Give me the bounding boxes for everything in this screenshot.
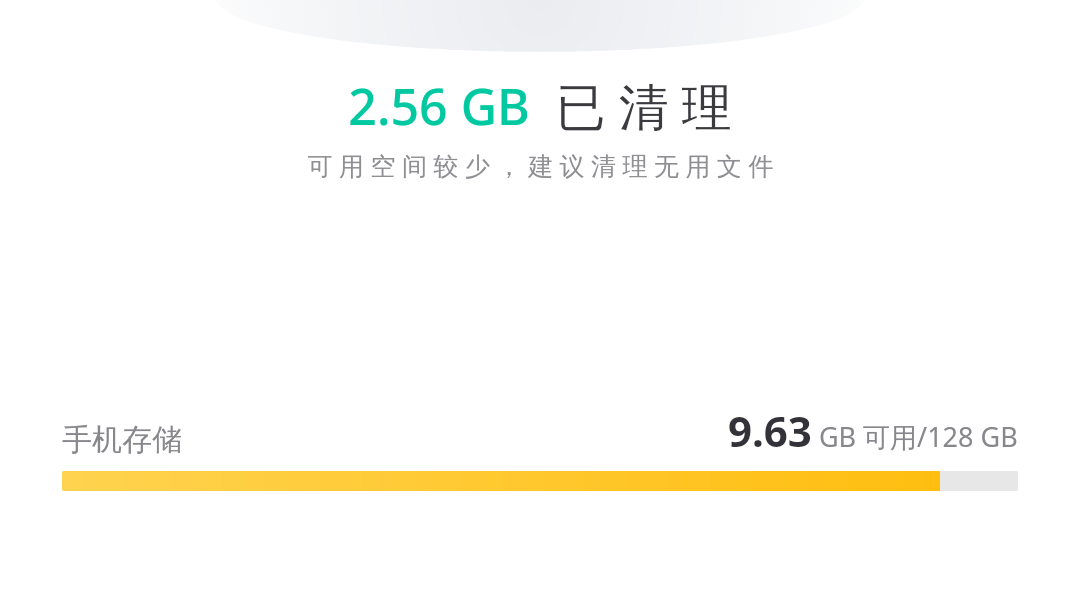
button[interactable]: 手机存储 — [0, 402, 1080, 491]
other: Storage usage 91 percent — [62, 471, 1018, 491]
staticText: 可 用 空 间 较 少 ， 建 议 清 理 无 用 文 件 — [307, 148, 774, 182]
staticText: 手机存储 — [62, 421, 182, 459]
staticText: 9.63 GB 可用/128 GB — [728, 402, 1018, 459]
staticText: 2.56 GB 已 清 理 — [348, 72, 732, 140]
